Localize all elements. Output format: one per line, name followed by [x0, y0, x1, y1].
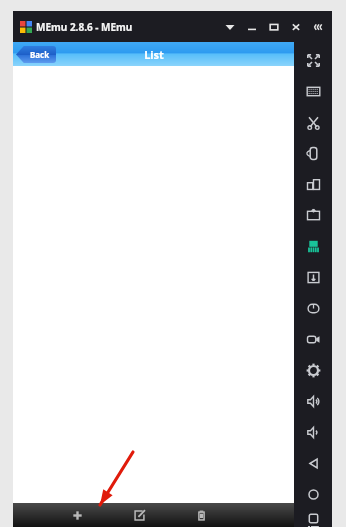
button[interactable]: Add	[62, 505, 93, 525]
button[interactable]: Rotate screen	[294, 138, 332, 169]
button[interactable]: Back	[294, 448, 332, 479]
button[interactable]: Back	[16, 46, 56, 63]
button[interactable]: Keyboard	[294, 76, 332, 107]
button[interactable]: Settings	[294, 355, 332, 386]
button[interactable]: Close	[285, 11, 307, 42]
button[interactable]: Record video	[294, 324, 332, 355]
staticText: MEmu 2.8.6 - MEmu	[36, 20, 133, 34]
staticText: Back	[30, 49, 50, 60]
button[interactable]: Install APK	[294, 200, 332, 231]
button[interactable]: Collapse	[219, 11, 241, 42]
button[interactable]: Edit	[124, 505, 155, 525]
button[interactable]: Maximize	[263, 11, 285, 42]
button[interactable]: Home	[294, 479, 332, 510]
staticText: List	[144, 47, 164, 62]
button[interactable]: Hide toolbar	[307, 11, 329, 42]
button[interactable]: Volume down	[294, 417, 332, 448]
button[interactable]: Delete	[186, 505, 217, 525]
button[interactable]: Shake	[294, 231, 332, 262]
button[interactable]: Fullscreen	[294, 45, 332, 76]
button[interactable]: Volume up	[294, 386, 332, 417]
button[interactable]: Location	[294, 293, 332, 324]
button[interactable]: Recents	[294, 510, 332, 527]
button[interactable]: Minimize	[241, 11, 263, 42]
button[interactable]: Screenshot scissors	[294, 107, 332, 138]
button[interactable]: Multi window	[294, 169, 332, 200]
button[interactable]: Shared folder	[294, 262, 332, 293]
